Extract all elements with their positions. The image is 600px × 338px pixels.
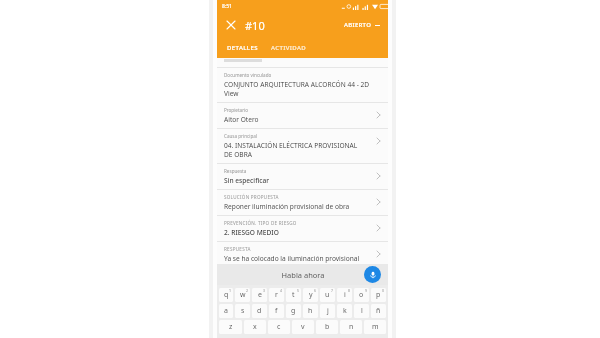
staticText: g	[291, 306, 296, 316]
button[interactable]: t	[286, 288, 301, 302]
staticText: ABIERTO	[344, 21, 372, 29]
staticText: 0	[382, 288, 385, 293]
staticText: x	[253, 322, 257, 332]
staticText: 4	[280, 288, 283, 293]
staticText: o	[359, 290, 364, 300]
staticText: a	[224, 306, 228, 316]
button[interactable]: ACTIVIDAD	[269, 41, 309, 55]
staticText: Propietario	[224, 107, 249, 113]
staticText: y	[309, 290, 313, 300]
staticText: e	[258, 290, 262, 300]
staticText: PREVENCIÓN. TIPO DE RIESGO	[224, 220, 297, 226]
button[interactable]: i	[337, 288, 352, 302]
staticText: Respuesta	[224, 168, 247, 174]
staticText: DETALLES	[227, 44, 258, 52]
button[interactable]: b	[316, 320, 338, 334]
button[interactable]: p	[371, 288, 386, 302]
button[interactable]: f	[269, 304, 284, 318]
button[interactable]: Micrófono	[364, 266, 381, 283]
button[interactable]: Respuesta	[217, 164, 388, 189]
button[interactable]: SOLUCIÓN PROPUESTA	[217, 190, 388, 215]
button[interactable]: o	[354, 288, 369, 302]
staticText: 04. INSTALACIÓN ELÉCTRICA PROVISIONAL DE…	[224, 141, 358, 159]
button[interactable]: l	[354, 304, 369, 318]
staticText: f	[275, 306, 278, 316]
staticText: Aitor Otero	[224, 115, 259, 124]
staticText: l	[361, 306, 363, 316]
staticText: z	[229, 322, 233, 332]
staticText: Habla ahora	[281, 270, 325, 280]
button[interactable]: m	[364, 320, 386, 334]
staticText: Sin especificar	[224, 176, 270, 185]
button[interactable]: c	[268, 320, 290, 334]
button[interactable]: w	[235, 288, 250, 302]
staticText: #10	[245, 18, 265, 33]
button[interactable]: Documento vinculado	[217, 68, 388, 102]
staticText: b	[325, 322, 330, 332]
staticText: SOLUCIÓN PROPUESTA	[224, 194, 279, 200]
staticText: Ya se ha colocado la iluminación provisi…	[224, 254, 360, 263]
button[interactable]: y	[303, 288, 318, 302]
staticText: q	[224, 290, 229, 300]
button[interactable]: Causa principal	[217, 129, 388, 163]
staticText: RESPUESTA	[224, 246, 251, 252]
staticText: 2	[246, 288, 249, 293]
staticText: 1	[229, 288, 232, 293]
button[interactable]: n	[340, 320, 362, 334]
button[interactable]: ABIERTO	[342, 18, 382, 32]
staticText: v	[301, 322, 305, 332]
button[interactable]: q	[219, 288, 233, 302]
button[interactable]: r	[269, 288, 284, 302]
button[interactable]: h	[303, 304, 318, 318]
staticText: c	[277, 322, 281, 332]
button[interactable]: e	[252, 288, 267, 302]
button[interactable]: u	[320, 288, 335, 302]
button[interactable]: RESPUESTA	[217, 242, 388, 267]
staticText: i	[344, 290, 346, 300]
button[interactable]: ñ	[371, 304, 386, 318]
staticText: m	[372, 322, 379, 332]
staticText: d	[257, 306, 262, 316]
staticText: 6	[314, 288, 317, 293]
staticText: t	[292, 290, 295, 300]
button[interactable]: d	[252, 304, 267, 318]
staticText: 9	[365, 288, 368, 293]
staticText: p	[376, 290, 381, 300]
staticText: ñ	[376, 306, 381, 316]
button[interactable]: x	[244, 320, 266, 334]
button[interactable]: Cerrar	[223, 17, 239, 33]
staticText: 8	[348, 288, 351, 293]
staticText: j	[327, 306, 329, 316]
staticText: r	[275, 290, 278, 300]
staticText: Causa principal	[224, 133, 258, 139]
staticText: 8:51	[222, 3, 232, 10]
button[interactable]: DETALLES	[225, 41, 260, 55]
button[interactable]: a	[219, 304, 233, 318]
staticText: ACTIVIDAD	[271, 44, 307, 52]
staticText: 5	[297, 288, 300, 293]
staticText: Documento vinculado	[224, 72, 272, 78]
button[interactable]: Propietario	[217, 103, 388, 128]
staticText: h	[308, 306, 313, 316]
staticText: n	[349, 322, 354, 332]
staticText: u	[325, 290, 330, 300]
staticText: k	[343, 306, 347, 316]
button[interactable]: v	[292, 320, 314, 334]
button[interactable]: z	[219, 320, 242, 334]
staticText: 2. RIESGO MEDIO	[224, 228, 279, 237]
button[interactable]: g	[286, 304, 301, 318]
staticText: 3	[263, 288, 266, 293]
staticText: CONJUNTO ARQUITECTURA ALCORCÓN 44 - 2D V…	[224, 80, 370, 98]
staticText: 7	[331, 288, 334, 293]
button[interactable]: PREVENCIÓN. TIPO DE RIESGO	[217, 216, 388, 241]
button[interactable]: j	[320, 304, 335, 318]
button[interactable]: s	[235, 304, 250, 318]
staticText: w	[240, 290, 246, 300]
staticText: Reponer iluminación provisional de obra	[224, 202, 350, 211]
button[interactable]: k	[337, 304, 352, 318]
staticText: s	[241, 306, 245, 316]
